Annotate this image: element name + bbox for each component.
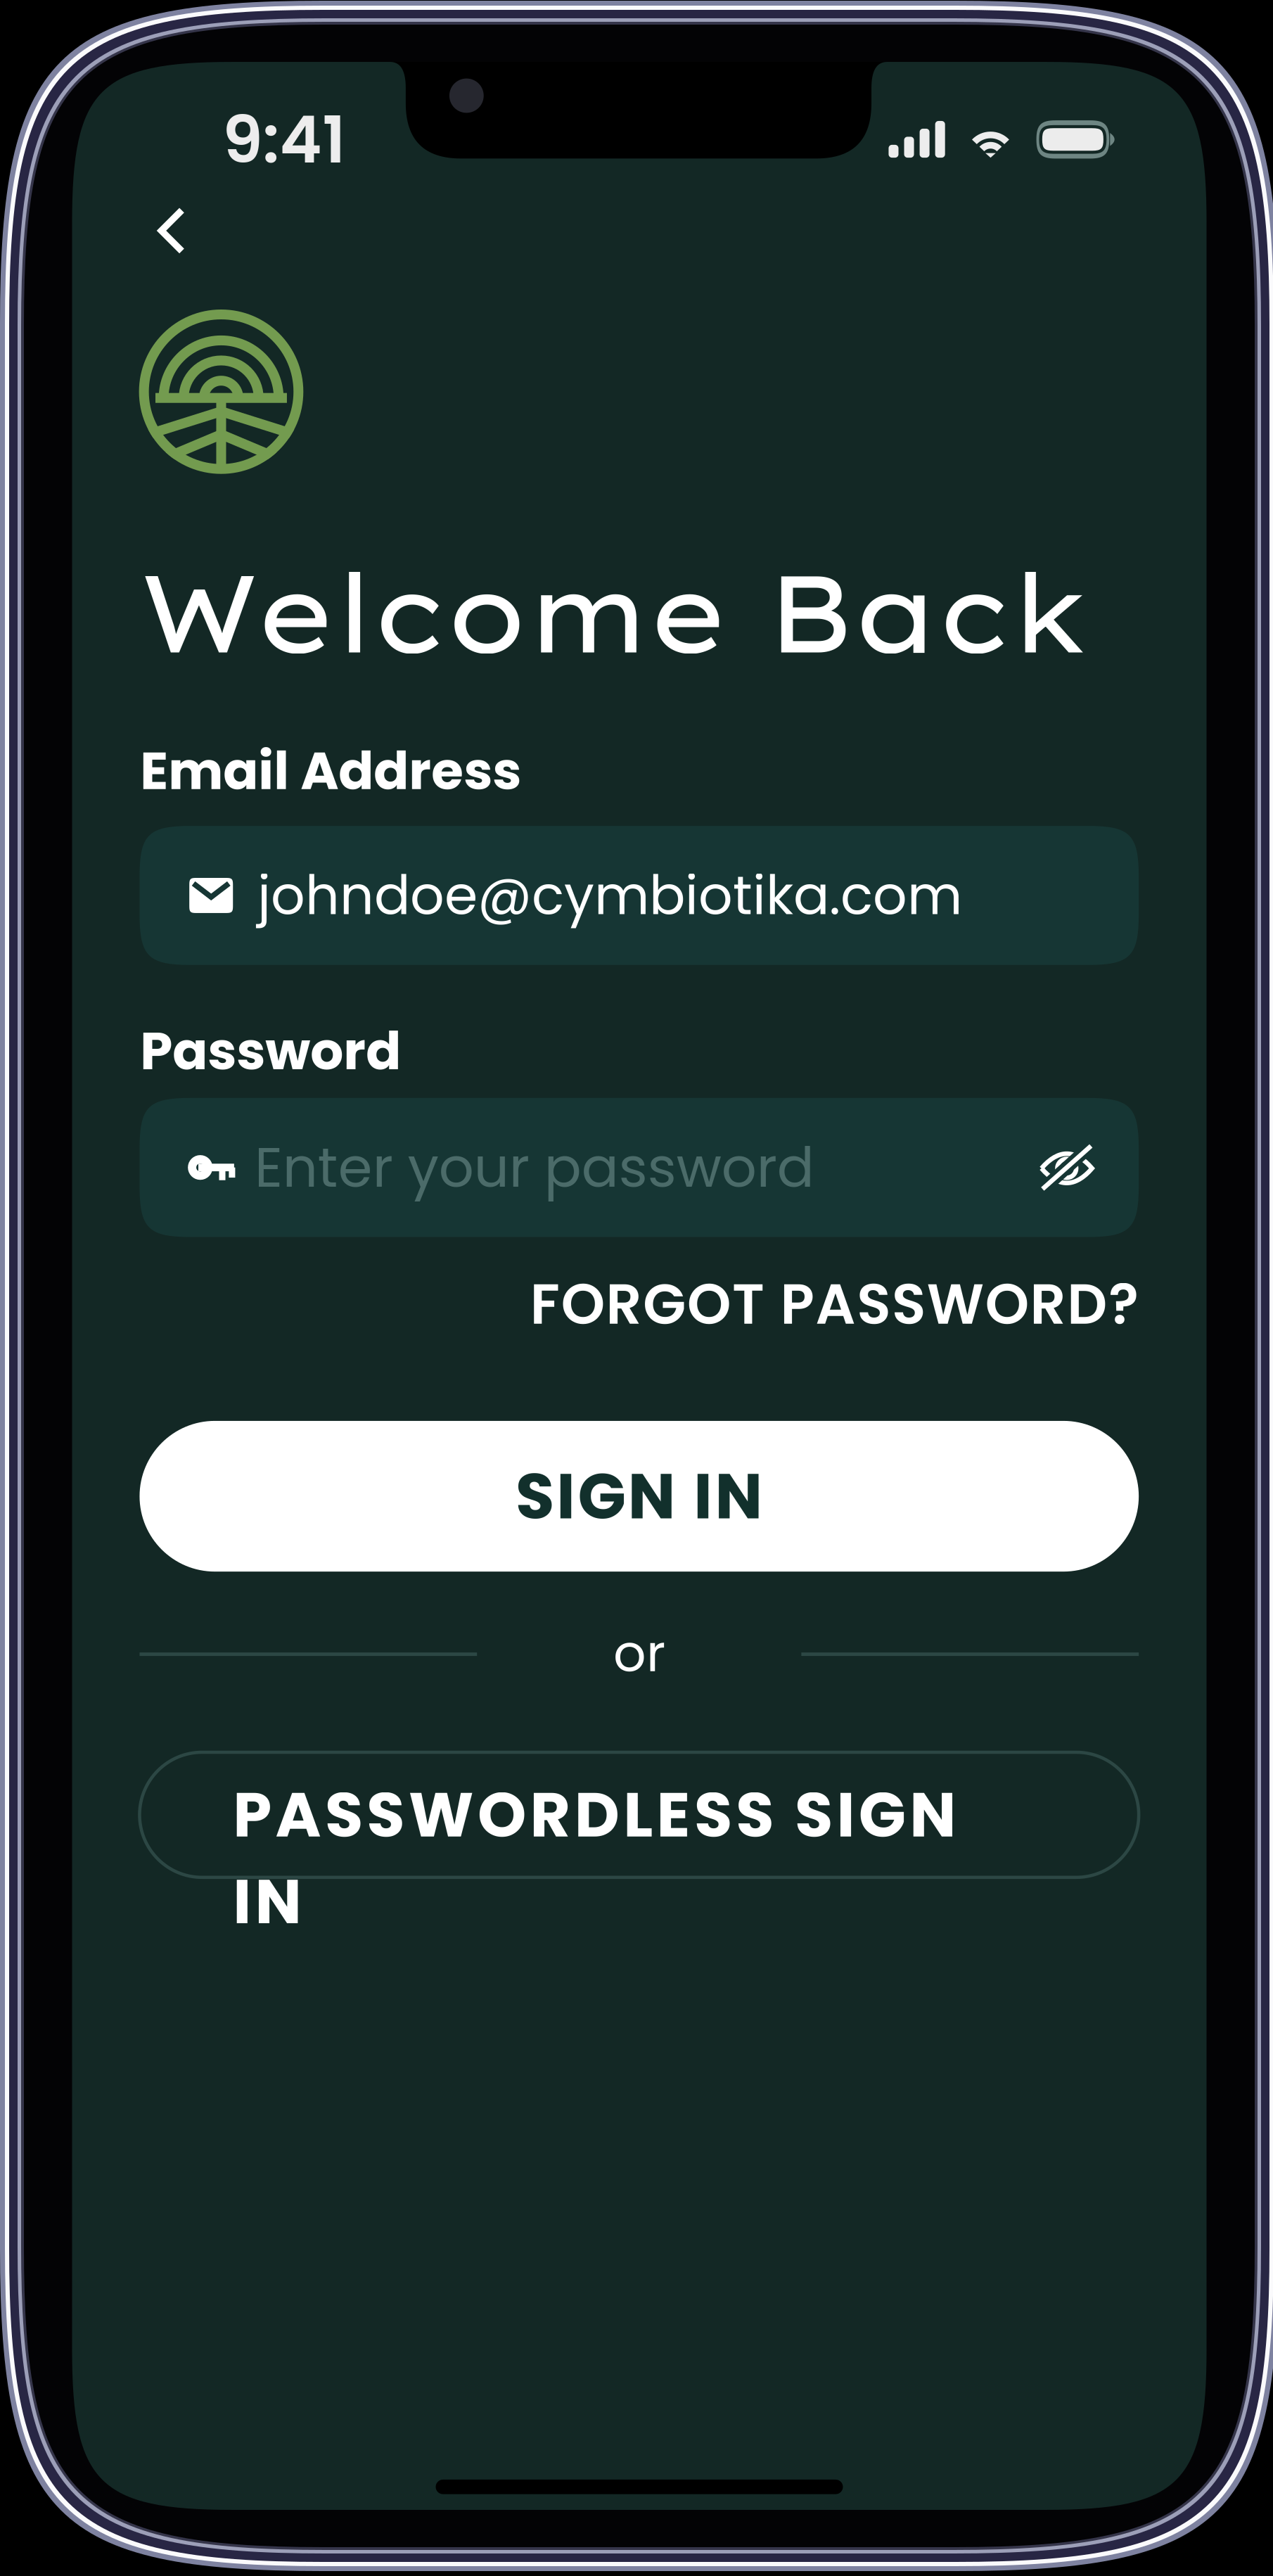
staticText: FORGOT PASSWORD? [530,1265,1139,1343]
staticText: Welcome Back [140,544,1089,679]
staticText: Password [140,1015,401,1088]
staticText: johndoe@cymbiotika.com [257,858,962,933]
staticText: Enter your password [254,1129,814,1206]
button[interactable]: FORGOT PASSWORD? [418,1264,1139,1345]
staticText: SIGN IN [516,1452,763,1540]
button[interactable]: PASSWORDLESS SIGN IN [140,1752,1139,1877]
staticText: PASSWORDLESS SIGN IN [233,1771,1045,1858]
staticText: or [613,1617,665,1689]
button[interactable]: SIGN IN [140,1421,1139,1572]
staticText: Email Address [140,735,521,807]
button[interactable]: Show password [1040,1146,1094,1189]
staticText: 9:41 [222,95,346,185]
button[interactable]: Back [95,172,229,289]
